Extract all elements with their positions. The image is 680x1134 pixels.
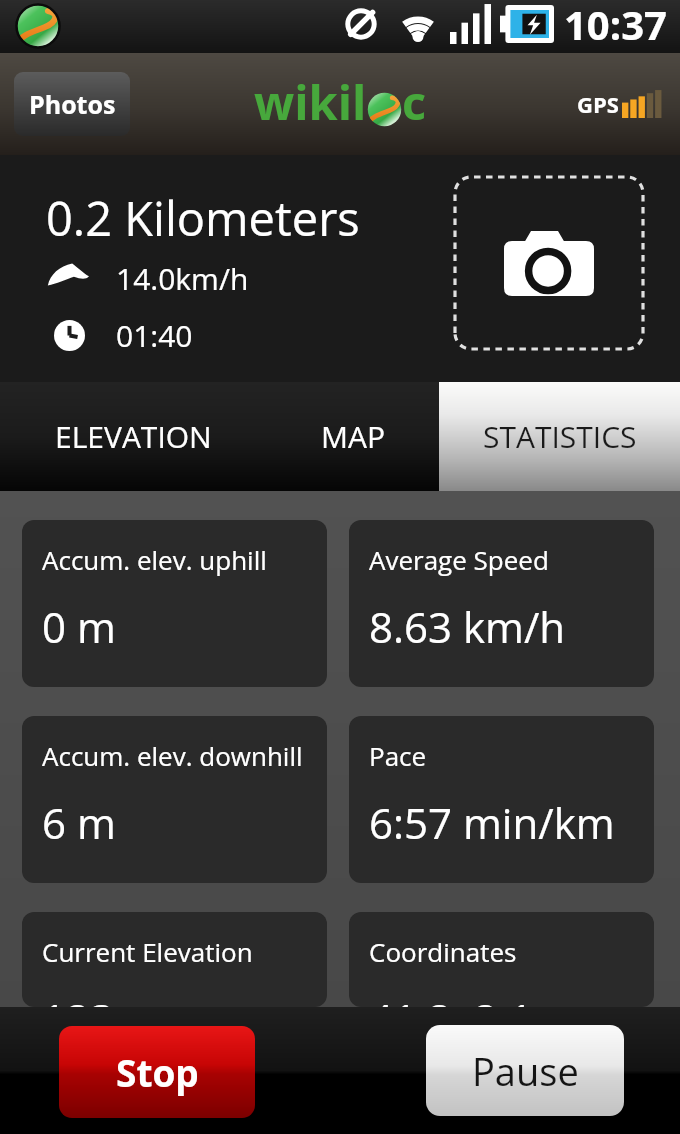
staticText: 0 m	[42, 598, 116, 655]
staticText: 123 m	[42, 990, 164, 1007]
staticText: 6 m	[42, 794, 116, 851]
staticText: Average Speed	[369, 542, 549, 577]
button[interactable]: Take photo	[455, 177, 643, 349]
button[interactable]: Accum. elev. downhill	[22, 716, 327, 883]
button[interactable]: Current Elevation	[22, 912, 327, 1007]
staticText: Photos	[29, 87, 116, 121]
button[interactable]: Pace	[349, 716, 654, 883]
staticText: STATISTICS	[483, 416, 637, 457]
staticText: 14.0km/h	[116, 258, 249, 299]
staticText: Current Elevation	[42, 934, 253, 969]
staticText: wikil	[254, 70, 367, 134]
staticText: Coordinates	[369, 934, 517, 969]
button[interactable]: Coordinates	[349, 912, 654, 1007]
staticText: 10:37	[564, 0, 667, 50]
staticText: 8.63 km/h	[369, 598, 566, 655]
staticText: 0.2 Kilometers	[46, 186, 360, 250]
staticText: ELEVATION	[55, 416, 212, 457]
button[interactable]: ELEVATION	[0, 382, 267, 491]
button[interactable]: Stop	[59, 1026, 255, 1118]
staticText: c	[402, 70, 427, 134]
button[interactable]: MAP	[267, 382, 439, 491]
staticText: 01:40	[116, 315, 193, 356]
staticText: Accum. elev. downhill	[42, 738, 303, 773]
button[interactable]: Accum. elev. uphill	[22, 520, 327, 687]
staticText: GPS	[577, 89, 619, 119]
staticText: Pause	[472, 1045, 579, 1097]
button[interactable]: STATISTICS	[439, 382, 680, 491]
staticText: 6:57 min/km	[369, 794, 615, 851]
staticText: Stop	[116, 1047, 199, 1097]
button[interactable]: GPS signal	[577, 89, 664, 119]
button[interactable]: Average Speed	[349, 520, 654, 687]
staticText: 41.2, 2.1	[369, 990, 533, 1007]
button[interactable]: Photos	[14, 72, 130, 136]
staticText: MAP	[321, 416, 385, 457]
staticText: Pace	[369, 738, 427, 773]
button[interactable]: Pause	[426, 1025, 624, 1116]
staticText: Accum. elev. uphill	[42, 542, 267, 577]
